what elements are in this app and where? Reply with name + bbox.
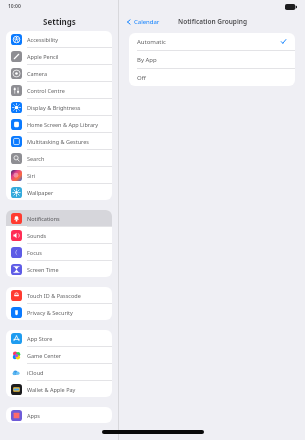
staticText: Search bbox=[27, 155, 45, 162]
button[interactable]: Wallet & Apple Pay bbox=[6, 381, 112, 397]
button[interactable]: Notifications bbox=[6, 210, 112, 226]
staticText: Multitasking & Gestures bbox=[27, 138, 89, 145]
staticText: Display & Brightness bbox=[27, 104, 81, 111]
button[interactable]: Camera bbox=[6, 65, 112, 81]
staticText: Calendar bbox=[134, 18, 160, 26]
other: Selected bbox=[280, 38, 287, 45]
staticText: By App bbox=[137, 56, 157, 64]
button[interactable]: Privacy & Security bbox=[6, 304, 112, 320]
button[interactable]: Sounds bbox=[6, 227, 112, 243]
staticText: iCloud bbox=[27, 369, 44, 376]
button[interactable]: Accessibility bbox=[6, 31, 112, 47]
staticText: Camera bbox=[27, 70, 48, 77]
staticText: Game Center bbox=[27, 352, 62, 359]
button[interactable]: Apple Pencil bbox=[6, 48, 112, 64]
staticText: Sounds bbox=[27, 232, 47, 239]
staticText: Focus bbox=[27, 249, 42, 256]
button[interactable]: Touch ID & Passcode bbox=[6, 287, 112, 303]
staticText: Accessibility bbox=[27, 36, 59, 43]
staticText: Apple Pencil bbox=[27, 53, 59, 60]
staticText: Off bbox=[137, 74, 146, 82]
button[interactable]: Siri bbox=[6, 167, 112, 183]
button[interactable]: Display & Brightness bbox=[6, 99, 112, 115]
staticText: Apps bbox=[27, 412, 40, 419]
button[interactable]: Search bbox=[6, 150, 112, 166]
button[interactable]: Control Centre bbox=[6, 82, 112, 98]
staticText: Control Centre bbox=[27, 87, 65, 94]
staticText: Automatic bbox=[137, 38, 166, 46]
button[interactable]: Off bbox=[129, 69, 295, 86]
button[interactable]: Apps bbox=[6, 407, 112, 423]
button[interactable]: App Store bbox=[6, 330, 112, 346]
button[interactable]: Wallpaper bbox=[6, 184, 112, 200]
staticText: Wallpaper bbox=[27, 189, 54, 196]
button[interactable]: Calendar bbox=[124, 16, 162, 28]
staticText: Home Screen & App Library bbox=[27, 121, 99, 128]
button[interactable]: By App bbox=[129, 51, 295, 68]
staticText: Notifications bbox=[27, 215, 60, 222]
button[interactable]: Focus bbox=[6, 244, 112, 260]
staticText: Touch ID & Passcode bbox=[27, 292, 81, 299]
staticText: App Store bbox=[27, 335, 53, 342]
staticText: Notification Grouping bbox=[178, 17, 247, 26]
button[interactable]: Multitasking & Gestures bbox=[6, 133, 112, 149]
staticText: Settings bbox=[43, 16, 76, 27]
staticText: Siri bbox=[27, 172, 36, 179]
button[interactable]: Screen Time bbox=[6, 261, 112, 277]
staticText: Screen Time bbox=[27, 266, 59, 273]
staticText: 10:00 bbox=[8, 3, 21, 10]
staticText: Wallet & Apple Pay bbox=[27, 386, 76, 393]
button[interactable]: Home Screen & App Library bbox=[6, 116, 112, 132]
button[interactable]: iCloud bbox=[6, 364, 112, 380]
button[interactable]: Automatic bbox=[129, 33, 295, 50]
button[interactable]: Game Center bbox=[6, 347, 112, 363]
staticText: Privacy & Security bbox=[27, 309, 73, 316]
